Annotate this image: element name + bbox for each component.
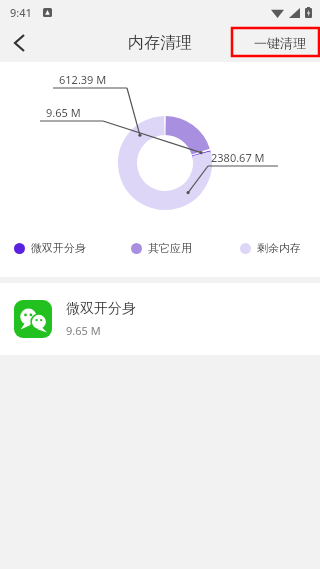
- staticText: 9:41: [10, 5, 32, 20]
- staticText: 剩余内存: [257, 241, 301, 255]
- staticText: 内存清理: [128, 33, 192, 53]
- staticText: 9.65 M: [66, 323, 101, 338]
- staticText: 其它应用: [148, 241, 192, 255]
- staticText: 一键清理: [254, 35, 306, 51]
- staticText: 微双开分身: [66, 300, 136, 318]
- button[interactable]: 微双开分身: [0, 283, 320, 355]
- button[interactable]: 一键清理: [240, 24, 320, 62]
- staticText: 612.39 M: [59, 72, 107, 87]
- staticText: 9.65 M: [46, 105, 81, 120]
- staticText: 微双开分身: [31, 241, 86, 255]
- button[interactable]: Back: [0, 24, 38, 62]
- staticText: 2380.67 M: [211, 150, 265, 165]
